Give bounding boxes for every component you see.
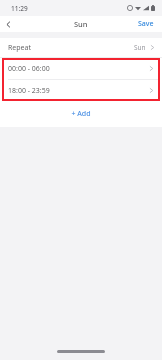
staticText: Save xyxy=(138,19,154,29)
button[interactable]: Save xyxy=(130,16,162,32)
staticText: 00:00 - 06:00 xyxy=(8,64,50,74)
button[interactable]: Repeat xyxy=(0,38,162,57)
staticText: 18:00 - 23:59 xyxy=(8,86,50,96)
button[interactable]: 00:00 - 06:00 xyxy=(2,58,160,79)
staticText: Sun xyxy=(74,19,88,29)
staticText: + Add xyxy=(71,109,91,119)
staticText: Sun xyxy=(134,43,146,52)
staticText: Repeat xyxy=(8,43,32,53)
staticText: 11:29 xyxy=(11,4,28,13)
button[interactable]: Back xyxy=(0,16,16,32)
button[interactable]: + Add xyxy=(0,101,162,127)
button[interactable]: 18:00 - 23:59 xyxy=(2,80,160,101)
